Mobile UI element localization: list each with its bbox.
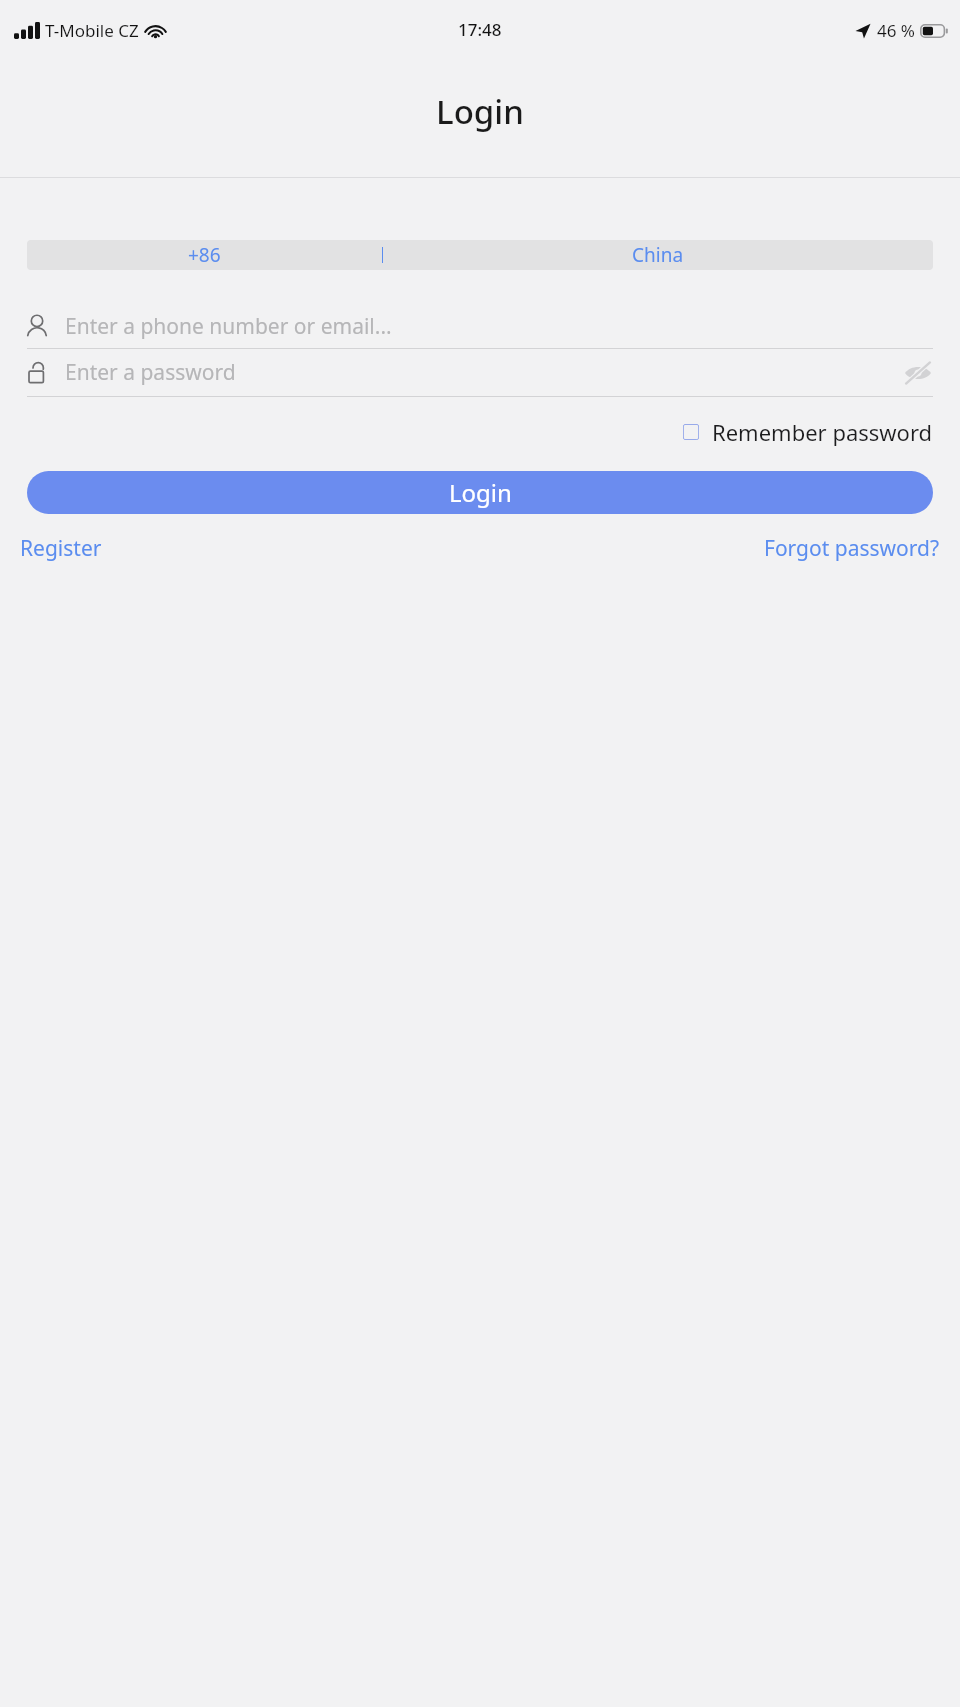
staticText: Enter a phone number or email... xyxy=(65,312,392,341)
other: Account xyxy=(27,315,47,337)
button[interactable]: Show password xyxy=(903,361,933,385)
staticText: Register xyxy=(20,534,102,563)
button[interactable]: Forgot password? xyxy=(762,534,942,563)
staticText: Forgot password? xyxy=(764,534,940,563)
staticText: China xyxy=(632,242,684,268)
staticText: Enter a password xyxy=(65,358,903,387)
button[interactable]: Remember password xyxy=(683,417,933,447)
button[interactable]: Account xyxy=(27,304,933,348)
other: Password xyxy=(27,361,47,384)
staticText: Login xyxy=(449,476,512,509)
staticText: 46 % xyxy=(877,19,915,42)
staticText: 17:48 xyxy=(458,18,502,41)
button[interactable]: Login xyxy=(27,471,933,514)
staticText: +86 xyxy=(188,242,221,268)
staticText: Login xyxy=(436,89,524,134)
staticText: Remember password xyxy=(712,417,933,447)
button[interactable]: Password xyxy=(27,349,933,396)
staticText: T-Mobile CZ xyxy=(45,19,139,42)
button[interactable]: Register xyxy=(18,534,104,563)
button[interactable]: +86 xyxy=(27,240,933,270)
